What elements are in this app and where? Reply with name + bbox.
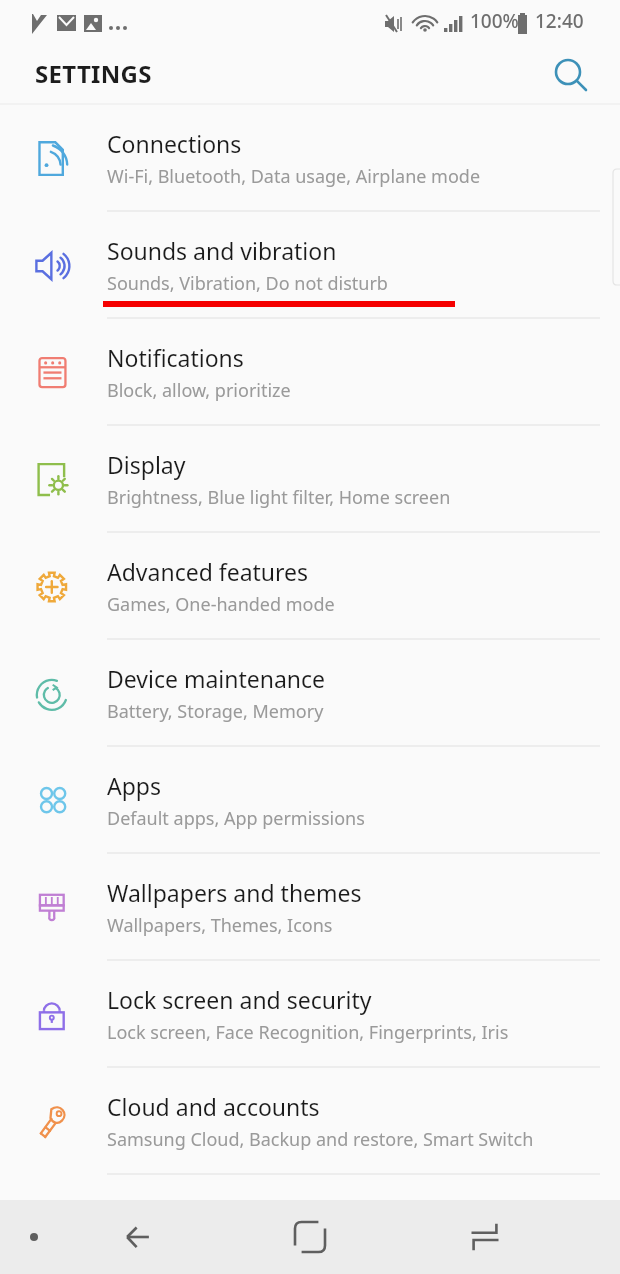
button[interactable]: Advanced features xyxy=(0,533,620,640)
staticText: Sounds, Vibration, Do not disturb xyxy=(107,271,388,296)
staticText: Brightness, Blue light filter, Home scre… xyxy=(107,485,451,510)
staticText: Advanced features xyxy=(107,556,309,587)
button[interactable]: Lock screen and security xyxy=(0,961,620,1068)
button[interactable]: Connections xyxy=(0,105,620,212)
button[interactable]: Sounds and vibration xyxy=(0,212,620,319)
staticText: Apps xyxy=(107,770,162,801)
staticText: Games, One-handed mode xyxy=(107,592,335,617)
button[interactable]: Notifications xyxy=(0,319,620,426)
button[interactable]: Search xyxy=(546,50,594,98)
button[interactable]: Back xyxy=(110,1209,166,1265)
button[interactable]: Recents xyxy=(457,1209,513,1265)
staticText: Notifications xyxy=(107,342,244,373)
staticText: Wallpapers, Themes, Icons xyxy=(107,913,333,938)
button[interactable]: Wallpapers and themes xyxy=(0,854,620,961)
button[interactable]: Apps xyxy=(0,747,620,854)
staticText: Sounds and vibration xyxy=(107,235,337,266)
button[interactable]: Display xyxy=(0,426,620,533)
button[interactable]: Device maintenance xyxy=(0,640,620,747)
staticText: Samsung Cloud, Backup and restore, Smart… xyxy=(107,1127,534,1152)
staticText: Lock screen and security xyxy=(107,984,372,1015)
staticText: Wi-Fi, Bluetooth, Data usage, Airplane m… xyxy=(107,164,481,189)
button[interactable]: Menu indicator xyxy=(12,1215,56,1259)
staticText: Battery, Storage, Memory xyxy=(107,699,324,724)
staticText: SETTINGS xyxy=(35,57,152,90)
staticText: Default apps, App permissions xyxy=(107,806,365,831)
button[interactable]: Cloud and accounts xyxy=(0,1068,620,1175)
staticText: Connections xyxy=(107,128,242,159)
staticText: Display xyxy=(107,449,186,480)
staticText: Device maintenance xyxy=(107,663,326,694)
staticText: Cloud and accounts xyxy=(107,1091,320,1122)
button[interactable]: Home xyxy=(282,1209,338,1265)
staticText: Block, allow, prioritize xyxy=(107,378,291,403)
staticText: 12:40 xyxy=(535,8,584,34)
staticText: Wallpapers and themes xyxy=(107,877,362,908)
staticText: 100% xyxy=(470,8,519,34)
staticText: Lock screen, Face Recognition, Fingerpri… xyxy=(107,1020,509,1045)
